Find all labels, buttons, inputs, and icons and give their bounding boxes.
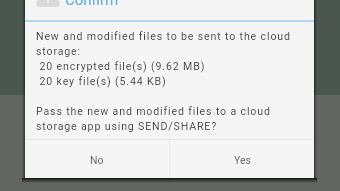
button[interactable]: Yes [170,140,314,178]
staticText: No [90,154,104,166]
staticText: Confirm [65,0,119,9]
staticText: New and modified files to be sent to the… [36,30,304,132]
button[interactable]: No [25,140,169,178]
staticText: Yes [234,154,251,166]
